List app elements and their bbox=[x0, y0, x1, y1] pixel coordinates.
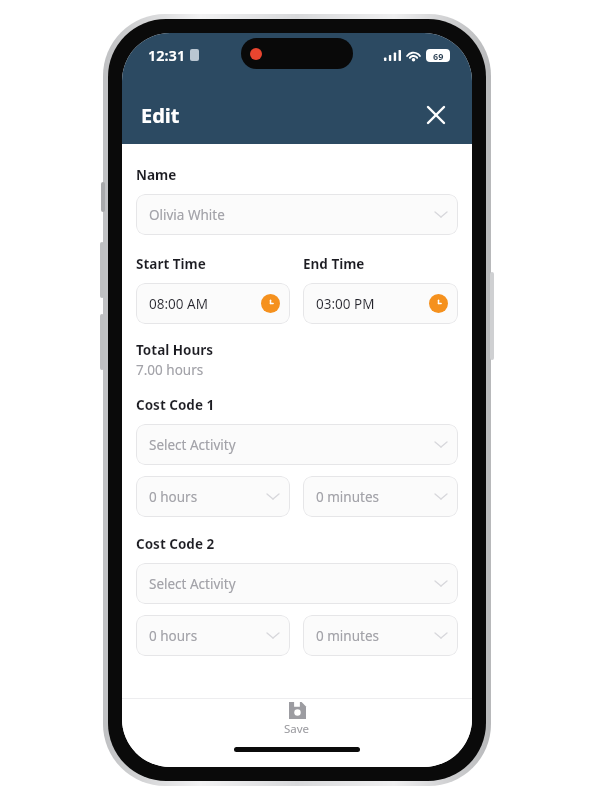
staticText: Select Activity bbox=[149, 575, 236, 593]
staticText: Name bbox=[136, 166, 177, 184]
button[interactable]: 0 minutes bbox=[303, 476, 458, 517]
button[interactable]: Select Activity bbox=[136, 424, 458, 465]
button[interactable]: 0 hours bbox=[136, 476, 290, 517]
staticText: Start Time bbox=[136, 255, 206, 273]
button[interactable]: 08:00 AM bbox=[136, 283, 290, 324]
staticText: 69 bbox=[433, 50, 444, 62]
button[interactable]: 03:00 PM bbox=[303, 283, 458, 324]
staticText: 0 minutes bbox=[316, 488, 379, 506]
staticText: 0 hours bbox=[149, 488, 198, 506]
staticText: 7.00 hours bbox=[136, 361, 204, 379]
staticText: 08:00 AM bbox=[149, 295, 208, 313]
button[interactable]: 0 hours bbox=[136, 615, 290, 656]
button[interactable]: Close bbox=[419, 98, 453, 132]
staticText: 0 minutes bbox=[316, 627, 379, 645]
staticText: Edit bbox=[141, 102, 180, 129]
staticText: Olivia White bbox=[149, 206, 225, 224]
staticText: 0 hours bbox=[149, 627, 198, 645]
staticText: Select Activity bbox=[149, 436, 236, 454]
staticText: 12:31 bbox=[148, 45, 186, 65]
button[interactable]: 0 minutes bbox=[303, 615, 458, 656]
staticText: End Time bbox=[303, 255, 365, 273]
button[interactable]: Olivia White bbox=[136, 194, 458, 235]
staticText: Save bbox=[284, 721, 310, 737]
staticText: Total Hours bbox=[136, 341, 214, 359]
staticText: Cost Code 2 bbox=[136, 535, 215, 553]
button[interactable]: Save bbox=[268, 699, 326, 740]
button[interactable]: Select Activity bbox=[136, 563, 458, 604]
staticText: 03:00 PM bbox=[316, 295, 375, 313]
staticText: Cost Code 1 bbox=[136, 396, 215, 414]
